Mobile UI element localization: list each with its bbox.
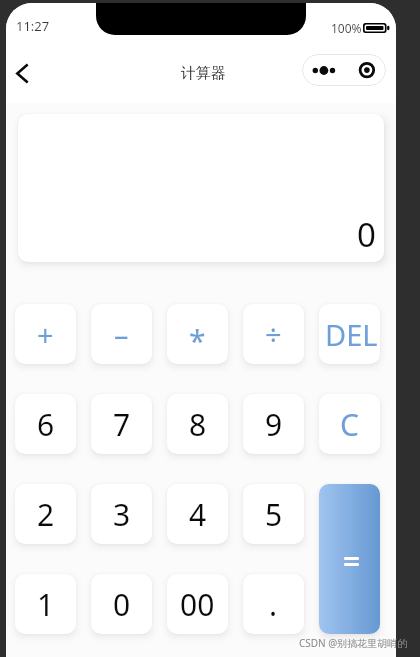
staticText: 6 <box>37 404 55 445</box>
staticText: . <box>269 584 278 625</box>
button[interactable]: 8 <box>167 394 228 454</box>
button[interactable]: 7 <box>91 394 152 454</box>
button[interactable]: 0 <box>91 574 152 634</box>
button[interactable]: + <box>15 304 76 364</box>
staticText: 5 <box>265 494 283 535</box>
staticText: ÷ <box>265 315 282 354</box>
staticText: 100% <box>331 20 362 36</box>
staticText: 0 <box>357 212 376 257</box>
staticText: * <box>189 320 206 361</box>
button[interactable]: – <box>91 304 152 364</box>
button[interactable]: ÷ <box>243 304 304 364</box>
staticText: 0 <box>113 584 131 625</box>
button[interactable]: 3 <box>91 484 152 544</box>
staticText: 1 <box>37 584 55 625</box>
staticText: DEL <box>325 315 378 354</box>
button[interactable]: * <box>167 304 228 364</box>
staticText: C <box>340 404 359 445</box>
staticText: 3 <box>113 494 131 535</box>
button[interactable]: 1 <box>15 574 76 634</box>
button[interactable]: 6 <box>15 394 76 454</box>
staticText: 00 <box>180 584 215 625</box>
staticText: + <box>37 315 54 354</box>
button[interactable]: 2 <box>15 484 76 544</box>
button[interactable]: 4 <box>167 484 228 544</box>
button[interactable]: 9 <box>243 394 304 454</box>
staticText: – <box>114 315 129 354</box>
button[interactable]: C <box>319 394 380 454</box>
button[interactable]: 5 <box>243 484 304 544</box>
staticText: CSDN @别搞花里胡哨的 <box>299 636 408 650</box>
button[interactable]: DEL <box>319 304 380 364</box>
staticText: 9 <box>265 404 283 445</box>
staticText: 8 <box>189 404 207 445</box>
staticText: 4 <box>189 494 207 535</box>
button[interactable]: 00 <box>167 574 228 634</box>
button[interactable]: More options <box>302 54 386 86</box>
staticText: 7 <box>113 404 131 445</box>
button[interactable]: Back <box>6 53 41 93</box>
staticText: 2 <box>37 494 55 535</box>
staticText: 11:27 <box>16 17 50 35</box>
staticText: 计算器 <box>181 64 226 83</box>
button[interactable]: . <box>243 574 304 634</box>
button[interactable]: Equals <box>319 484 380 634</box>
